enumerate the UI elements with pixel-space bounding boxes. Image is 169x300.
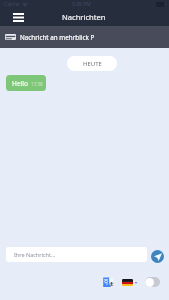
button[interactable]: Select language bbox=[121, 276, 138, 288]
button[interactable]: HEUTE bbox=[67, 56, 117, 71]
staticText: Carrier bbox=[4, 1, 21, 8]
staticText: HEUTE bbox=[83, 60, 102, 68]
staticText: Hello bbox=[12, 79, 28, 88]
button[interactable]: Nachricht an mehrblick P bbox=[0, 26, 169, 48]
staticText: Nachrichten bbox=[62, 12, 106, 22]
button[interactable]: Hello bbox=[6, 75, 46, 91]
staticText: Ihre Nachricht... bbox=[14, 251, 56, 258]
button[interactable]: Toggle translation bbox=[145, 277, 160, 287]
button[interactable]: Translate bbox=[102, 275, 115, 288]
button[interactable]: Menu bbox=[8, 8, 28, 26]
button[interactable]: Ihre Nachricht... bbox=[6, 247, 147, 262]
staticText: Nachricht an mehrblick P bbox=[20, 33, 95, 42]
staticText: 5:38 PM bbox=[72, 1, 91, 8]
button[interactable]: Send bbox=[151, 250, 164, 263]
staticText: 17:38 bbox=[31, 81, 43, 87]
